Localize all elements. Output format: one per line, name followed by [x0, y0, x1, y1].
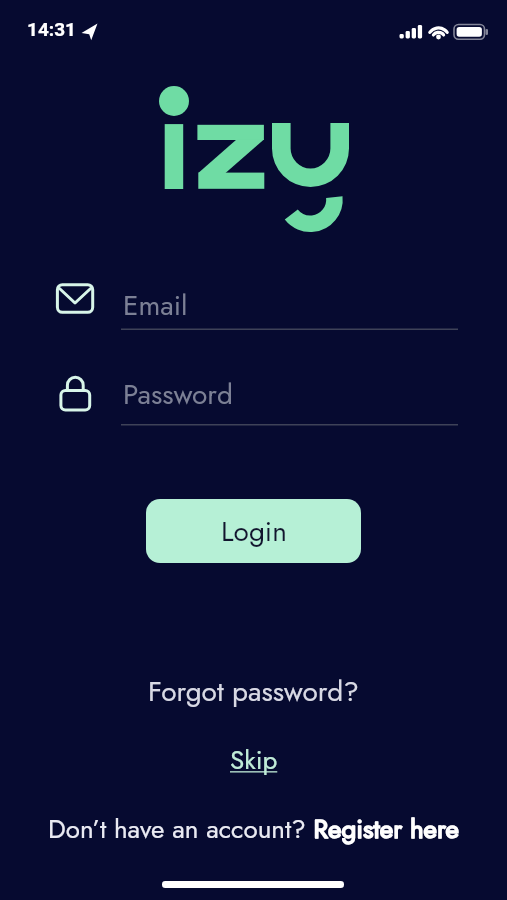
staticText: Don’t have an account? Register here: [48, 810, 459, 848]
button[interactable]: Password: [122, 369, 458, 419]
staticText: Email: [123, 285, 188, 325]
staticText: Password: [123, 374, 233, 414]
button[interactable]: Login: [146, 499, 361, 563]
staticText: Skip: [230, 741, 278, 779]
button[interactable]: Email: [122, 280, 458, 330]
staticText: Don’t have an account? Register here: [48, 810, 459, 848]
staticText: Login: [221, 511, 287, 551]
button[interactable]: Don’t have an account? Register here: [0, 810, 507, 848]
button[interactable]: Forgot password?: [0, 671, 507, 711]
staticText: Forgot password?: [148, 671, 359, 711]
button[interactable]: Skip: [0, 741, 507, 779]
staticText: 14:31: [27, 18, 76, 40]
